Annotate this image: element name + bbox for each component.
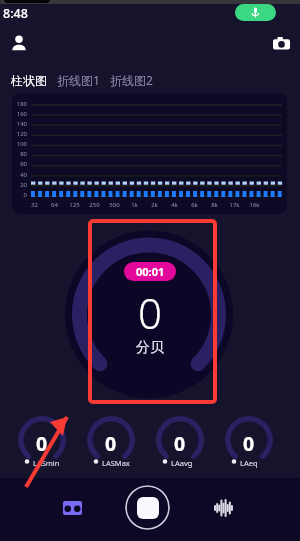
button[interactable]: 折线图1 [56,72,101,88]
staticText: 6k [187,201,202,209]
staticText: 20 [13,181,27,189]
staticText: 40 [13,171,27,179]
button[interactable]: Profile [4,28,34,58]
staticText: 0 [174,430,186,457]
staticText: 0 [243,430,255,457]
button[interactable]: 0 [150,415,210,471]
staticText: 180 [13,100,27,108]
staticText: 8k [207,201,222,209]
staticText: LAavg [171,458,193,468]
staticText: 折线图2 [110,72,153,88]
staticText: 8:48 [3,5,28,22]
staticText: 0 [105,430,117,457]
staticText: 柱状图 [11,73,47,88]
button[interactable]: Camera [266,28,296,58]
staticText: 4k [167,201,182,209]
staticText: 0 [138,284,162,341]
staticText: 0 [13,191,27,199]
staticText: 64 [47,201,62,209]
staticText: 0 [36,430,48,457]
button[interactable]: Recordings [54,490,90,526]
button[interactable]: Stop recording [125,485,170,530]
staticText: LASMax [102,458,130,468]
staticText: 120 [13,130,27,138]
button[interactable]: 0 [12,415,72,471]
button[interactable]: 柱状图 [10,73,48,88]
staticText: 00:01 [136,264,165,279]
staticText: LAeq [240,458,258,468]
staticText: 32 [27,201,42,209]
staticText: 2k [147,201,162,209]
staticText: 250 [87,201,102,209]
staticText: 17k [227,201,242,209]
button[interactable]: 折线图2 [109,72,154,88]
staticText: 分贝 [136,339,164,357]
staticText: 折线图1 [57,72,100,88]
staticText: 160 [13,110,27,118]
staticText: 125 [67,201,82,209]
button[interactable]: 0 [81,415,141,471]
button[interactable]: Microphone [235,4,276,21]
staticText: 500 [107,201,122,209]
staticText: 60 [13,160,27,168]
staticText: 80 [13,150,27,158]
button[interactable]: 00:01 [124,262,176,281]
staticText: 140 [13,120,27,128]
staticText: 16k [247,201,262,209]
button[interactable]: Audio levels [205,490,241,526]
staticText: LASmin [33,458,60,468]
staticText: 1k [127,201,142,209]
button[interactable]: 0 [219,415,279,471]
staticText: 100 [13,140,27,148]
